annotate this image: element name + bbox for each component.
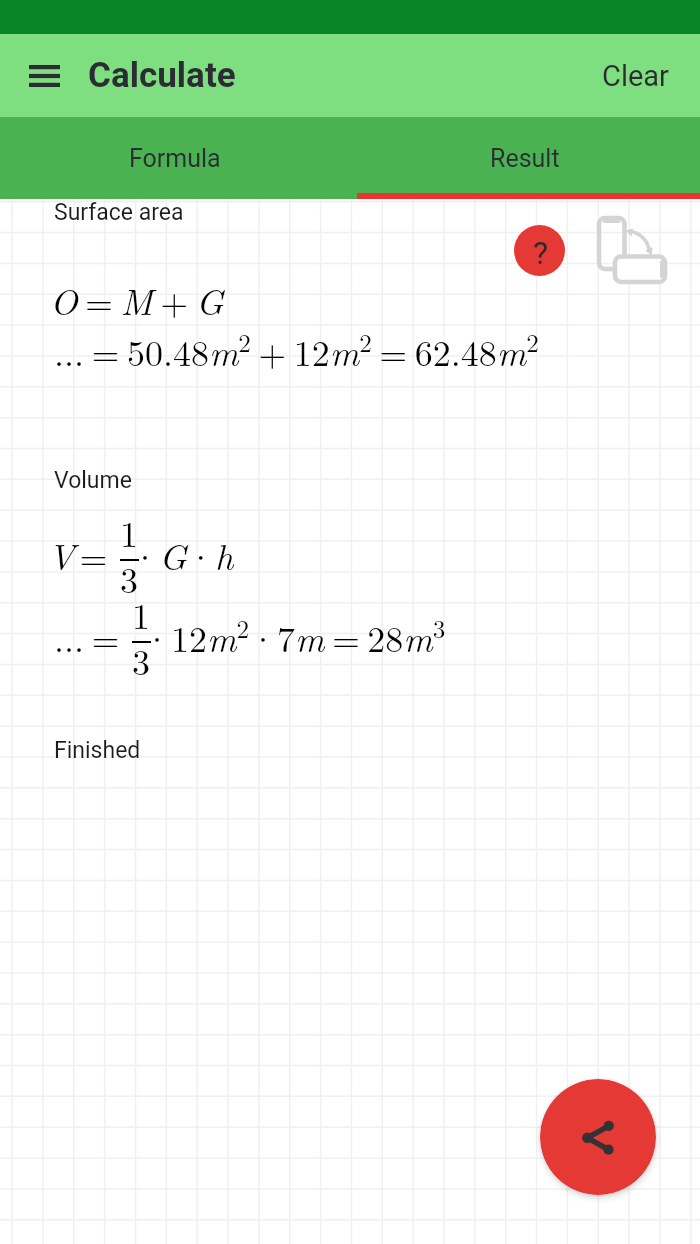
button[interactable]: Open navigation menu	[14, 46, 74, 106]
staticText: Clear	[602, 59, 669, 93]
staticText: ?	[533, 234, 549, 272]
staticText: Result	[490, 144, 560, 173]
staticText: 3	[120, 552, 138, 603]
staticText: 3	[132, 634, 150, 685]
button[interactable]: Formula	[0, 117, 350, 199]
staticText: 1	[120, 506, 138, 557]
button[interactable]: Share	[540, 1079, 656, 1195]
staticText: V =	[48, 529, 108, 580]
staticText: 1	[132, 588, 150, 639]
button[interactable]: Rotate device	[592, 212, 666, 284]
button[interactable]: Clear	[580, 34, 700, 117]
staticText: Calculate	[88, 55, 236, 96]
staticText: Volume	[54, 467, 132, 494]
staticText: Formula	[129, 144, 221, 173]
staticText: ·12m2·7m = 28m3	[143, 610, 446, 662]
button[interactable]: Help	[514, 225, 565, 276]
staticText: O = M + G	[50, 274, 224, 325]
staticText: ... =	[54, 611, 120, 662]
staticText: Surface area	[54, 199, 184, 226]
button[interactable]: Result	[350, 117, 700, 199]
staticText: Finished	[54, 737, 141, 764]
staticText: ·G·h	[131, 529, 234, 580]
staticText: ... = 50.48m2 + 12m2 = 62.48m2	[54, 324, 539, 376]
